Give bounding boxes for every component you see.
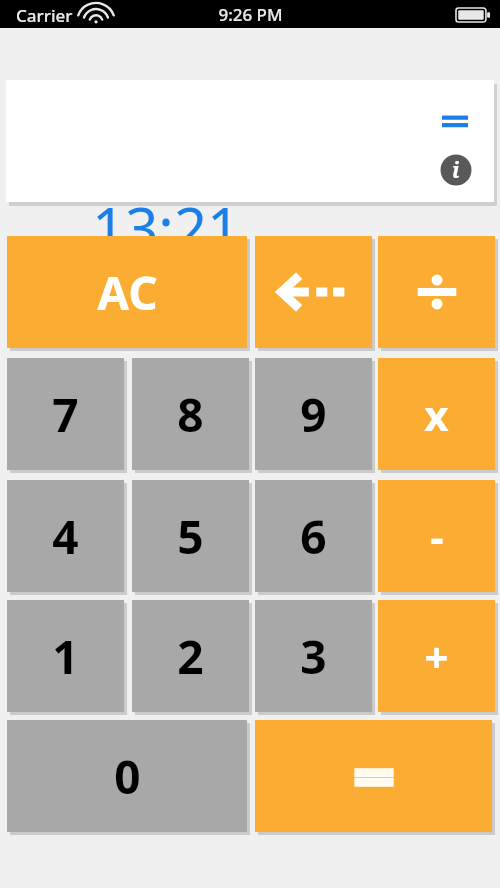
button[interactable]: - xyxy=(378,480,495,592)
button[interactable]: 3 xyxy=(255,600,372,712)
staticText: 5 xyxy=(177,505,204,568)
button[interactable]: 7 xyxy=(7,358,124,470)
button[interactable]: Divide xyxy=(378,236,495,348)
button[interactable]: x xyxy=(378,358,495,470)
button[interactable]: 4 xyxy=(7,480,124,592)
staticText: AC xyxy=(97,261,158,324)
staticText: 9:26 PM xyxy=(218,3,283,26)
staticText: i xyxy=(452,156,460,185)
staticText: 1 xyxy=(52,625,79,688)
button[interactable]: Equals xyxy=(255,720,492,832)
staticText: 13:21 xyxy=(92,188,241,267)
staticText: + xyxy=(424,628,449,685)
staticText: 3 xyxy=(300,625,327,688)
button[interactable]: 0 xyxy=(7,720,247,832)
staticText: 4 xyxy=(52,505,79,568)
button[interactable]: 5 xyxy=(132,480,249,592)
button[interactable]: 8 xyxy=(132,358,249,470)
staticText: 8 xyxy=(177,383,204,446)
staticText: x xyxy=(424,386,449,443)
staticText: 6 xyxy=(300,505,327,568)
button[interactable]: + xyxy=(378,600,495,712)
button[interactable]: 2 xyxy=(132,600,249,712)
staticText: Carrier xyxy=(16,4,73,27)
staticText: 7 xyxy=(52,383,79,446)
button[interactable]: 9 xyxy=(255,358,372,470)
button[interactable]: Backspace xyxy=(255,236,372,348)
staticText: 0 xyxy=(114,745,141,808)
button[interactable]: Info xyxy=(438,152,474,188)
button[interactable]: Equals history xyxy=(434,104,476,138)
staticText: 2 xyxy=(177,625,204,688)
button[interactable]: All clear xyxy=(7,236,247,348)
button[interactable]: 1 xyxy=(7,600,124,712)
button[interactable]: 6 xyxy=(255,480,372,592)
staticText: - xyxy=(430,508,444,565)
staticText: 9 xyxy=(300,383,327,446)
